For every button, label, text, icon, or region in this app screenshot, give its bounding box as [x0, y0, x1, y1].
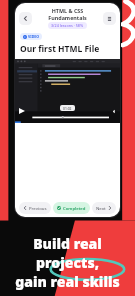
staticText: Next [96, 205, 106, 211]
staticText: Our first HTML File [20, 43, 100, 55]
button[interactable]: Previous [19, 202, 51, 214]
staticText: Build real projects, [0, 234, 135, 272]
button[interactable]: Completed [53, 202, 90, 214]
staticText: 01:02 [63, 106, 72, 110]
button[interactable]: Play lesson video [15, 59, 120, 123]
staticText: gain real skills [15, 272, 120, 291]
staticText: 3/24 lessons · 58% [51, 23, 84, 28]
staticText: Completed [63, 205, 86, 211]
button[interactable]: Next [92, 202, 116, 214]
staticText: VIDEO [28, 34, 39, 39]
button[interactable]: Lesson menu [103, 12, 116, 25]
staticText: Previous [29, 205, 47, 211]
button[interactable]: Back [19, 12, 32, 25]
staticText: HTML & CSS Fundamentals [32, 7, 103, 21]
